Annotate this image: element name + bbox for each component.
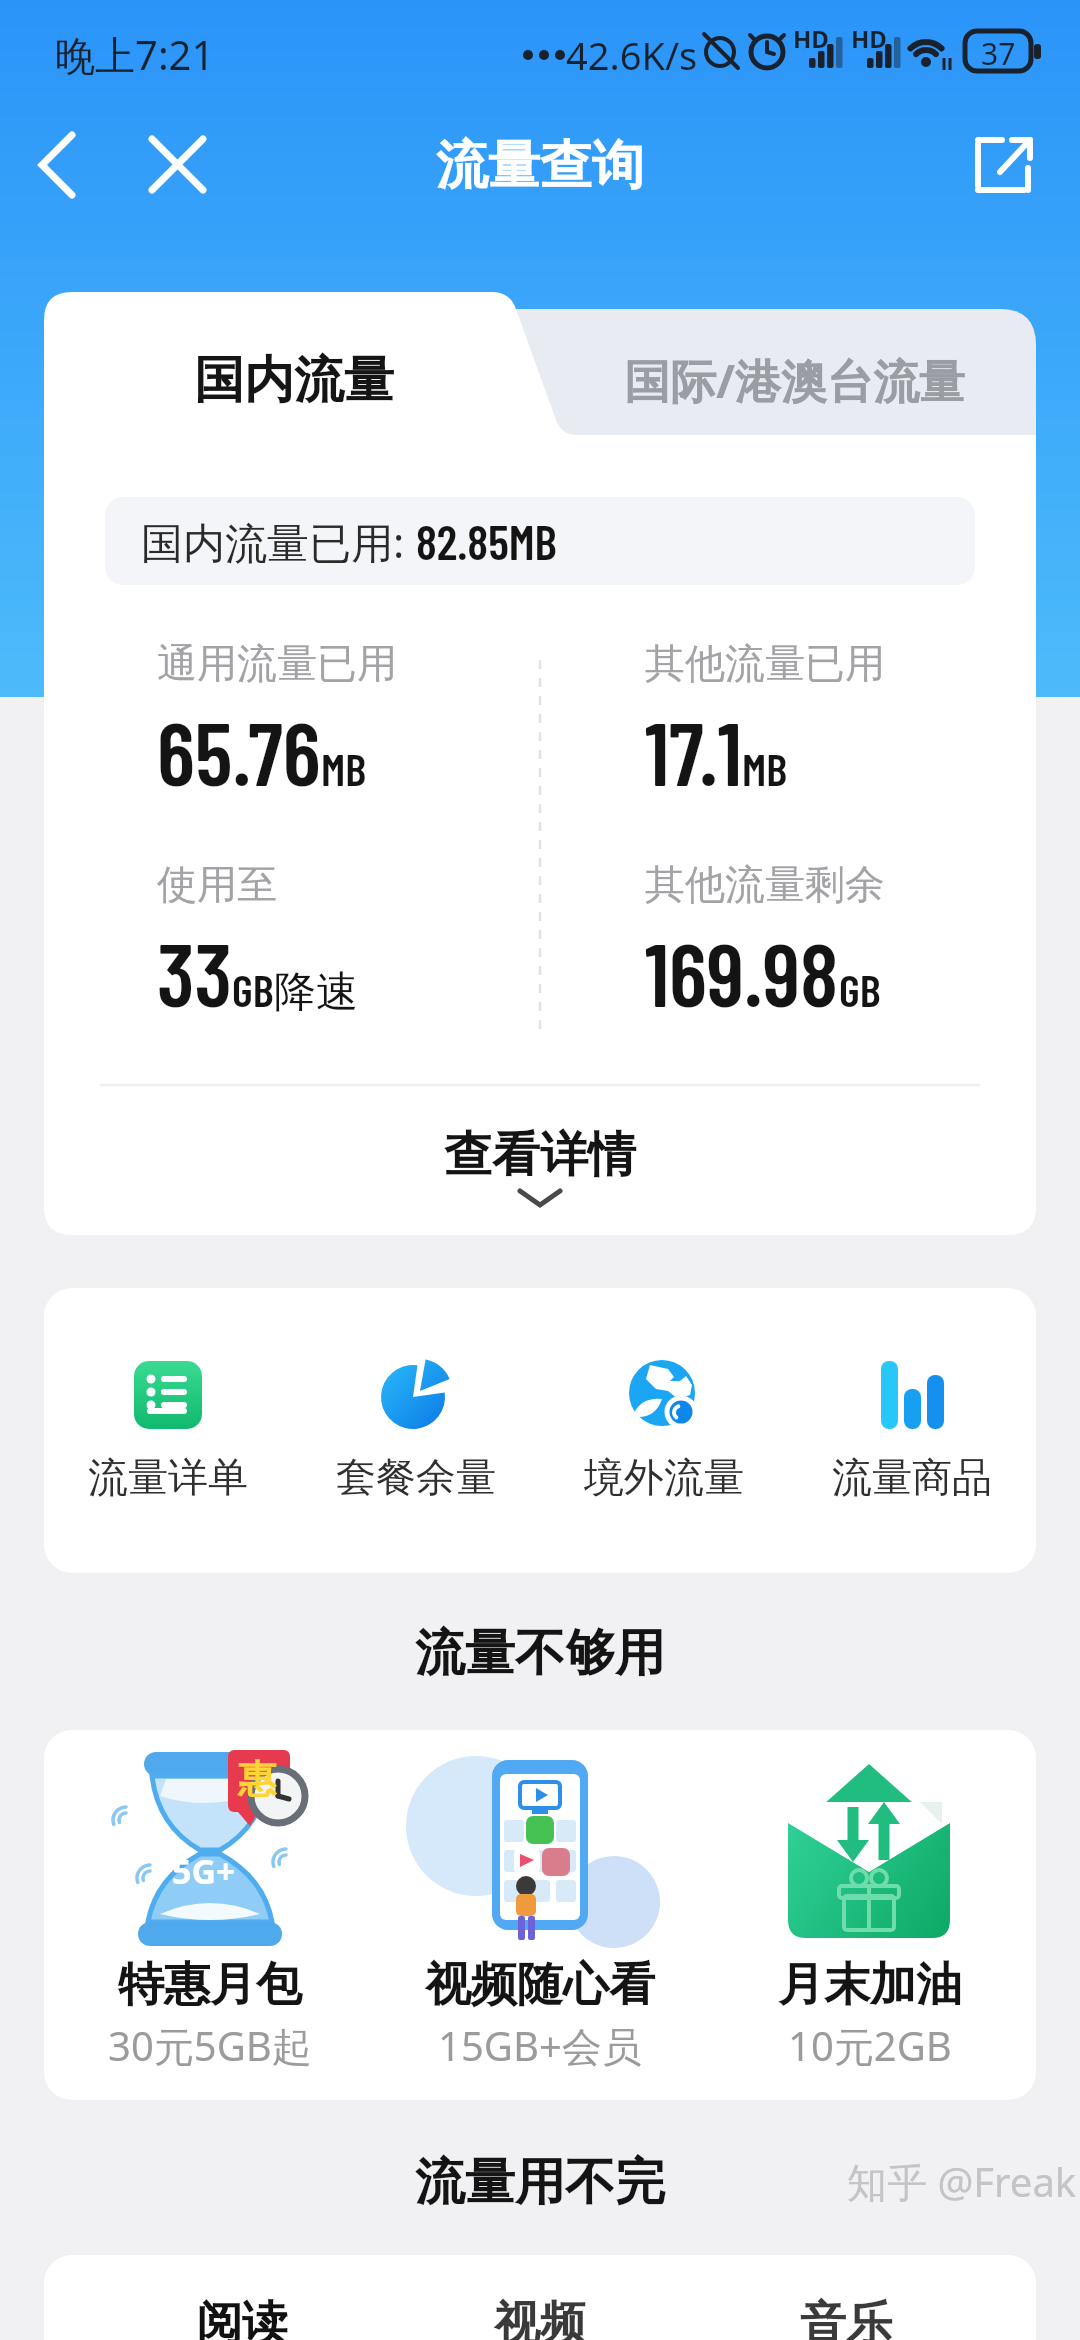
staticText: 42.6K/s	[566, 29, 698, 81]
button[interactable]: 视频	[450, 2295, 630, 2340]
staticText: 通用流量已用	[157, 638, 397, 688]
staticText: 套餐余量	[336, 1452, 496, 1502]
staticText: 晚上7:21	[55, 27, 215, 82]
staticText: 视频	[494, 2295, 586, 2340]
staticText: 10元2GB	[788, 2018, 952, 2073]
button[interactable]: 月末加油	[710, 1740, 1030, 2090]
button[interactable]: 音乐	[756, 2295, 936, 2340]
button[interactable]: 视频随心看	[380, 1740, 700, 2090]
staticText: 惠	[238, 1755, 276, 1803]
staticText: 月末加油	[778, 1956, 962, 2014]
staticText: 国内流量已用:	[141, 513, 416, 570]
staticText: MB	[321, 741, 367, 795]
button[interactable]: 境外流量	[540, 1318, 788, 1543]
staticText: 65.76	[157, 698, 321, 804]
staticText: 17.1	[645, 698, 742, 804]
staticText: 境外流量	[584, 1452, 744, 1502]
button[interactable]: 国际/港澳台流量	[584, 337, 1006, 423]
staticText: HD	[851, 22, 887, 55]
staticText: 降速	[274, 966, 358, 1019]
staticText: 查看详情	[444, 1125, 636, 1185]
staticText: 阅读	[196, 2295, 288, 2340]
staticText: 30元5GB起	[108, 2018, 312, 2073]
staticText: 音乐	[800, 2295, 892, 2340]
staticText: 流量用不完	[415, 2151, 665, 2214]
staticText: 流量商品	[832, 1452, 992, 1502]
button[interactable]: 国内流量	[144, 337, 444, 423]
staticText: 流量查询	[436, 133, 644, 199]
staticText: 169.98	[645, 919, 839, 1025]
button[interactable]	[20, 120, 110, 215]
button[interactable]: 阅读	[152, 2295, 332, 2340]
button[interactable]: 套餐余量	[292, 1318, 540, 1543]
staticText: GB	[839, 962, 881, 1016]
staticText: 使用至	[157, 859, 277, 909]
button[interactable]: 国内流量已用:	[105, 497, 975, 585]
staticText: 流量不够用	[415, 1622, 665, 1685]
staticText: HD	[793, 22, 829, 55]
staticText: 特惠月包	[118, 1956, 302, 2014]
staticText: 15GB+会员	[438, 2018, 642, 2073]
staticText: 国内流量	[194, 349, 394, 412]
staticText: 33	[157, 919, 232, 1025]
button[interactable]	[130, 120, 225, 215]
staticText: MB	[742, 741, 788, 795]
staticText: 其他流量剩余	[645, 859, 885, 909]
staticText: 国际/港澳台流量	[624, 349, 966, 412]
staticText: 37	[981, 33, 1016, 74]
staticText: 5G+	[172, 1848, 236, 1894]
staticText: 视频随心看	[425, 1956, 655, 2014]
button[interactable]: 查看详情	[390, 1125, 690, 1220]
staticText: 知乎 @Freak	[847, 2154, 1077, 2209]
button[interactable]	[960, 120, 1050, 215]
button[interactable]: 流量详单	[44, 1318, 292, 1543]
button[interactable]: 流量商品	[788, 1318, 1036, 1543]
staticText: 其他流量已用	[645, 638, 885, 688]
staticText: 流量详单	[88, 1452, 248, 1502]
staticText: 82.85MB	[416, 512, 557, 570]
staticText: GB	[232, 962, 274, 1016]
button[interactable]: 特惠月包	[50, 1740, 370, 2090]
